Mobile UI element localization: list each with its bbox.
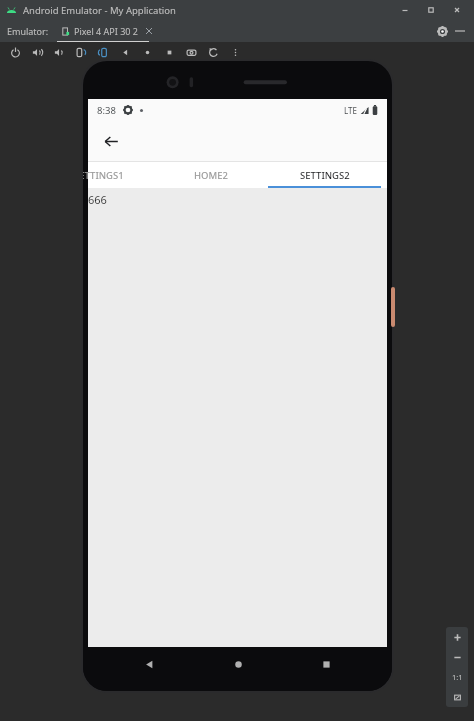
button[interactable]: Settings <box>433 22 451 40</box>
button[interactable]: Home <box>211 647 265 681</box>
staticText: Android Emulator - My Application <box>23 4 176 17</box>
button[interactable]: HOME2 <box>155 162 268 188</box>
button[interactable]: Fit to screen <box>446 687 468 707</box>
staticText: HOME2 <box>194 169 229 182</box>
button[interactable]: Back <box>114 42 136 63</box>
staticText: LTE <box>344 105 357 116</box>
staticText: Emulator: <box>7 25 49 37</box>
staticText: SETTINGS1 <box>83 169 124 182</box>
button[interactable]: SETTINGS1 <box>83 162 155 188</box>
button[interactable]: Back <box>122 647 176 681</box>
button[interactable]: Home <box>136 42 158 63</box>
button[interactable]: Volume down <box>48 42 70 63</box>
button[interactable]: Rotate right <box>92 42 114 63</box>
button[interactable]: Collapse <box>451 22 469 40</box>
button[interactable]: Screenshot <box>180 42 202 63</box>
button[interactable]: SETTINGS2 <box>268 162 381 188</box>
staticText: SETTINGS2 <box>300 169 350 182</box>
staticText: 8:38 <box>97 104 116 117</box>
button[interactable]: More <box>224 42 246 63</box>
button[interactable]: Close tab <box>144 26 154 36</box>
button[interactable]: Overview <box>158 42 180 63</box>
staticText: 1:1 <box>452 672 463 682</box>
button[interactable]: Record <box>202 42 224 63</box>
staticText: Pixel 4 API 30 2 <box>74 25 138 37</box>
button[interactable]: Zoom out <box>446 647 468 667</box>
button[interactable]: Minimize <box>392 0 418 20</box>
button[interactable]: Recent apps <box>299 647 353 681</box>
staticText: 666 <box>88 192 107 207</box>
button[interactable]: Maximize <box>418 0 444 20</box>
button[interactable]: Navigate up <box>96 126 126 156</box>
button[interactable]: Pixel 4 API 30 2 <box>61 20 154 42</box>
button[interactable]: Zoom in <box>446 627 468 647</box>
button[interactable]: Rotate left <box>70 42 92 63</box>
button[interactable]: Volume up <box>26 42 48 63</box>
button[interactable]: Close <box>444 0 470 20</box>
button[interactable]: 1:1 <box>446 667 468 687</box>
button[interactable]: Power <box>4 42 26 63</box>
